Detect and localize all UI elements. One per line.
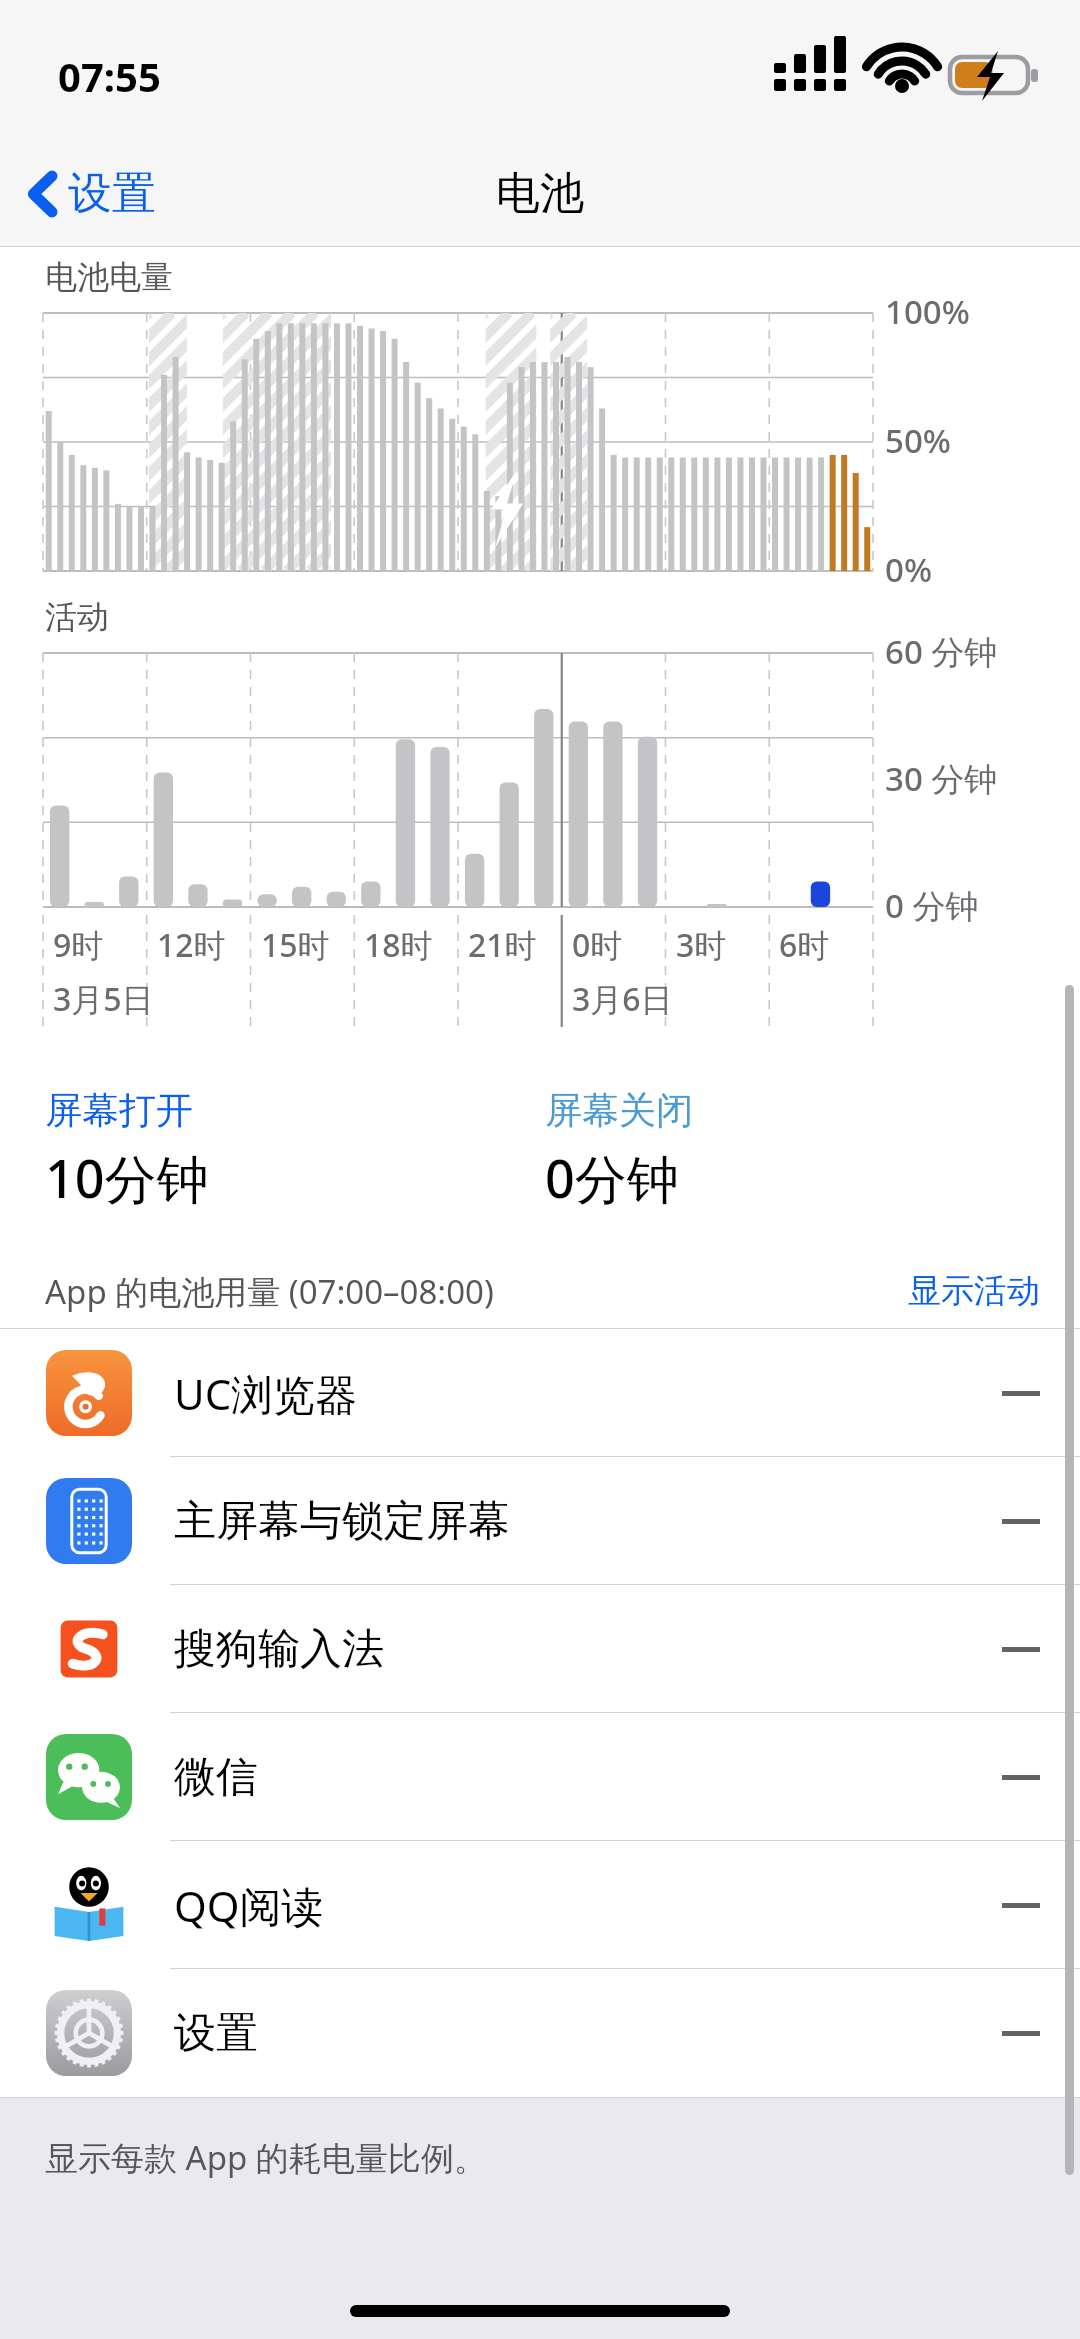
button[interactable]: 设置	[0, 1969, 1080, 2097]
staticText: 30 分钟	[885, 756, 998, 801]
staticText: 主屏幕与锁定屏幕	[174, 1495, 510, 1548]
button[interactable]: 屏幕打开	[45, 1087, 545, 1213]
staticText: QQ阅读	[174, 1877, 324, 1934]
staticText: 6时	[779, 923, 830, 967]
staticText: 设置	[174, 2007, 258, 2060]
staticText: 微信	[174, 1751, 258, 1804]
staticText: 0 分钟	[885, 883, 979, 928]
staticText: 12时	[157, 923, 226, 967]
staticText: 0时	[572, 923, 623, 967]
staticText: 3月5日	[53, 977, 154, 1021]
staticText: 10分钟	[45, 1142, 209, 1213]
staticText: 屏幕关闭	[545, 1087, 693, 1134]
staticText: 搜狗输入法	[174, 1623, 384, 1676]
staticText: 电池	[496, 166, 584, 221]
button[interactable]: QQ阅读	[0, 1841, 1080, 1969]
staticText: 9时	[53, 923, 104, 967]
button[interactable]: UC浏览器	[0, 1329, 1080, 1457]
staticText: 100%	[885, 289, 970, 334]
button[interactable]: 主屏幕与锁定屏幕	[0, 1457, 1080, 1585]
staticText: 07:55	[58, 49, 161, 103]
button[interactable]: 微信	[0, 1713, 1080, 1841]
staticText: 活动	[45, 597, 109, 637]
staticText: 0%	[885, 547, 932, 592]
staticText: 3时	[676, 923, 727, 967]
staticText: 18时	[364, 923, 433, 967]
staticText: 显示每款 App 的耗电量比例。	[45, 2135, 487, 2180]
button[interactable]: 搜狗输入法	[0, 1585, 1080, 1713]
staticText: 设置	[68, 166, 156, 221]
staticText: 电池电量	[45, 257, 173, 297]
staticText: 15时	[261, 923, 330, 967]
staticText: 50%	[885, 418, 951, 463]
staticText: 3月6日	[572, 977, 673, 1021]
staticText: 0分钟	[545, 1142, 679, 1213]
button[interactable]: 显示活动	[888, 1270, 1080, 1312]
staticText: 21时	[468, 923, 537, 967]
other: Back	[28, 171, 58, 217]
button[interactable]: 屏幕关闭	[545, 1087, 1080, 1213]
staticText: 60 分钟	[885, 629, 998, 674]
button[interactable]: Back	[18, 154, 166, 233]
staticText: 屏幕打开	[45, 1087, 193, 1134]
staticText: UC浏览器	[174, 1365, 358, 1422]
staticText: App 的电池用量 (07:00–08:00)	[45, 1269, 494, 1314]
